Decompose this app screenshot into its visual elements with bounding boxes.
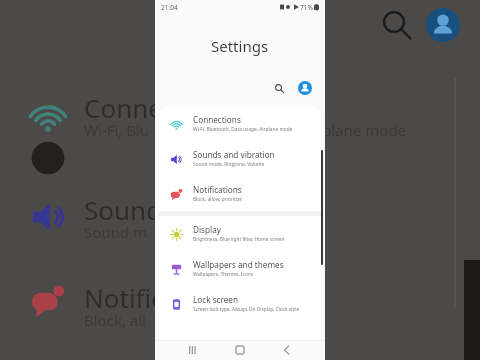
button[interactable]: Display xyxy=(159,216,321,251)
staticText: Notific xyxy=(84,280,164,315)
button[interactable]: Search xyxy=(269,78,289,98)
button[interactable]: Wallpapers and themes xyxy=(159,251,321,286)
button[interactable]: Account xyxy=(295,78,315,98)
button[interactable]: Lock screen xyxy=(159,286,321,321)
staticText: Sound xyxy=(84,192,163,227)
button[interactable]: Recents xyxy=(184,341,202,359)
button[interactable]: Home xyxy=(231,341,249,359)
button[interactable]: Connections xyxy=(159,106,321,141)
staticText: Wi-Fi, Blu xyxy=(84,120,150,140)
staticText: Sounds and vibration xyxy=(193,149,275,160)
staticText: Wallpapers, Themes, Icons xyxy=(193,271,254,278)
staticText: Sound mode, Ringtone, Volume xyxy=(193,161,265,168)
staticText: Conne xyxy=(84,90,163,125)
button[interactable]: Back xyxy=(278,341,296,359)
staticText: Lock screen xyxy=(193,294,239,305)
staticText: 71% xyxy=(300,3,313,12)
staticText: Wi-Fi, Bluetooth, Data usage, Airplane m… xyxy=(193,126,293,133)
staticText: plane mode xyxy=(322,120,406,140)
staticText: Wallpapers and themes xyxy=(193,259,284,270)
staticText: Display xyxy=(193,224,221,235)
staticText: Settings xyxy=(211,36,269,56)
button[interactable]: Sounds and vibration xyxy=(159,141,321,176)
button[interactable]: Notifications xyxy=(159,176,321,211)
staticText: Block, all xyxy=(84,310,146,330)
staticText: Screen lock type, Always On Display, Clo… xyxy=(193,306,300,313)
staticText: Brightness, Blue light filter, Home scre… xyxy=(193,236,285,243)
staticText: Sound m xyxy=(84,222,148,242)
staticText: Connections xyxy=(193,114,241,125)
staticText: Block, allow, prioritize xyxy=(193,196,242,203)
staticText: Notifications xyxy=(193,184,242,195)
staticText: 21:04 xyxy=(161,3,178,12)
